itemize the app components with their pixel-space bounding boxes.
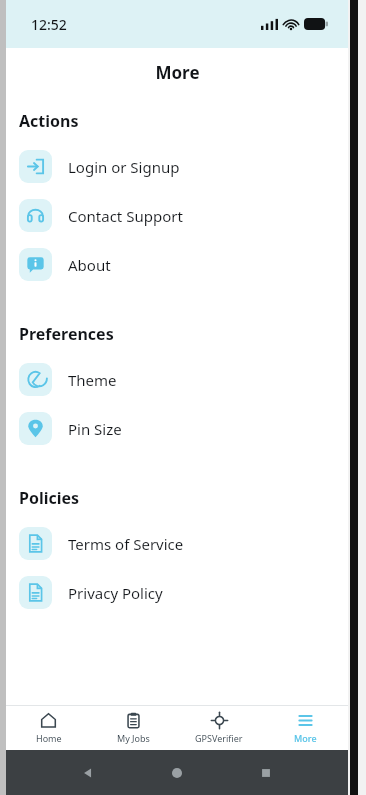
- other: Recents: [259, 766, 273, 780]
- other: Home: [170, 766, 184, 780]
- staticText: More: [294, 732, 317, 744]
- button[interactable]: About: [6, 240, 348, 289]
- button[interactable]: Home: [6, 706, 91, 750]
- staticText: 12:52: [31, 15, 67, 34]
- staticText: Terms of Service: [68, 534, 184, 554]
- staticText: Contact Support: [68, 206, 183, 226]
- button[interactable]: Pin Size: [6, 404, 348, 453]
- staticText: Actions: [19, 110, 79, 132]
- staticText: More: [155, 61, 200, 84]
- button[interactable]: Login or Signup: [6, 142, 348, 191]
- button[interactable]: Privacy Policy: [6, 568, 348, 617]
- staticText: Pin Size: [68, 419, 122, 439]
- button[interactable]: Theme: [6, 355, 348, 404]
- staticText: Preferences: [19, 323, 114, 345]
- staticText: Home: [36, 732, 62, 744]
- button[interactable]: Terms of Service: [6, 519, 348, 568]
- button[interactable]: GPSVerifier: [176, 706, 262, 750]
- staticText: Theme: [68, 370, 117, 390]
- staticText: Login or Signup: [68, 157, 180, 177]
- staticText: About: [68, 255, 111, 275]
- button[interactable]: My Jobs: [91, 706, 176, 750]
- staticText: Policies: [19, 487, 80, 509]
- staticText: GPSVerifier: [195, 732, 243, 744]
- staticText: Privacy Policy: [68, 583, 163, 603]
- staticText: My Jobs: [117, 732, 150, 744]
- button[interactable]: More: [262, 706, 348, 750]
- other: Back: [81, 766, 95, 780]
- button[interactable]: Contact Support: [6, 191, 348, 240]
